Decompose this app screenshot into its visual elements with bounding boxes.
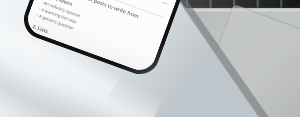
staticText: - A generic question xyxy=(36,13,75,32)
button[interactable]: Matt Barker xyxy=(52,0,170,13)
staticText: The 3 worst, laziest posts to write from xyxy=(47,0,141,20)
staticText: … xyxy=(161,0,170,7)
staticText: - A warning hot take xyxy=(38,6,78,25)
other: Laptop on desk xyxy=(0,0,300,117)
staticText: - An industry opinion xyxy=(40,0,82,20)
staticText: 2. Lists xyxy=(32,23,49,35)
button[interactable]: 9:41 xyxy=(23,0,187,75)
staticText: 1. One-liners xyxy=(43,0,74,8)
